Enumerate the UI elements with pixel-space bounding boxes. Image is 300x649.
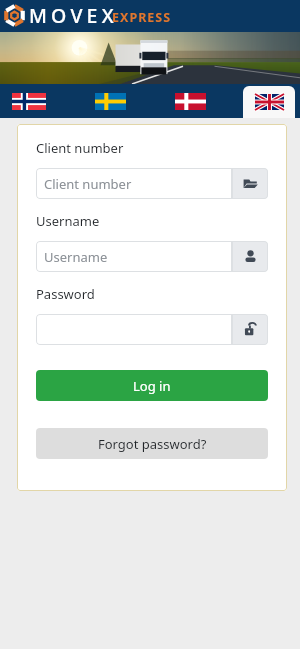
button[interactable] (36, 314, 232, 345)
button[interactable]: Log in (36, 370, 268, 401)
staticText: Log in (133, 377, 171, 395)
button[interactable]: Language (6, 84, 52, 118)
staticText: Password (36, 285, 95, 303)
button[interactable]: English (243, 86, 295, 118)
staticText: EXPRESS (112, 9, 172, 26)
button[interactable]: Language (167, 84, 213, 118)
button[interactable]: Show password (232, 314, 268, 345)
button[interactable]: Username (36, 241, 232, 272)
staticText: Client number (44, 175, 132, 193)
staticText: MOVEX (29, 2, 118, 29)
button[interactable]: Language (87, 84, 133, 118)
button[interactable]: Forgot password? (36, 428, 268, 459)
button[interactable]: Client number (36, 168, 232, 199)
staticText: Username (36, 212, 100, 230)
staticText: Client number (36, 139, 124, 157)
staticText: Username (44, 248, 108, 266)
button[interactable]: Browse clients (232, 168, 268, 199)
button[interactable]: Pick user (232, 241, 268, 272)
staticText: Forgot password? (98, 435, 207, 453)
